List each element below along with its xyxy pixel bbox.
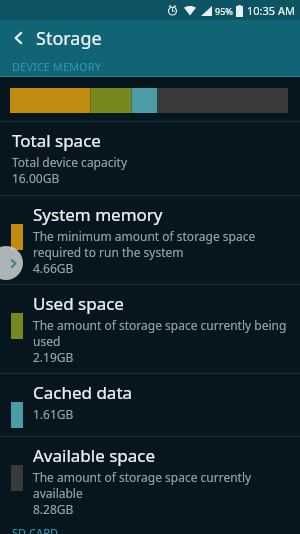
- staticText: Available space: [33, 444, 156, 467]
- staticText: used: [33, 333, 61, 349]
- staticText: Total space: [12, 129, 101, 152]
- button[interactable]: Open side panel: [0, 246, 23, 280]
- button[interactable]: Available space: [0, 437, 300, 525]
- staticText: Used space: [33, 292, 124, 315]
- button[interactable]: System memory: [0, 196, 300, 284]
- staticText: System memory: [33, 203, 163, 226]
- staticText: 16.00GB: [12, 170, 60, 186]
- button[interactable]: Used space: [0, 285, 300, 373]
- button[interactable]: Back: [0, 20, 300, 56]
- staticText: Total device capacity: [12, 154, 128, 170]
- staticText: 1.61GB: [33, 406, 74, 422]
- button[interactable]: Cached data: [0, 374, 300, 436]
- staticText: Cached data: [33, 381, 133, 404]
- staticText: Storage: [36, 26, 102, 51]
- staticText: The amount of storage space currently: [33, 469, 252, 485]
- staticText: The amount of storage space currently be…: [33, 317, 287, 333]
- other: Back: [8, 27, 30, 49]
- staticText: required to run the system: [33, 244, 184, 260]
- button[interactable]: Total space: [0, 122, 300, 195]
- staticText: The minimum amount of storage space: [33, 228, 256, 244]
- staticText: 8.28GB: [33, 501, 74, 517]
- staticText: 2.19GB: [33, 349, 74, 365]
- staticText: SD CARD: [12, 525, 59, 534]
- staticText: 10:35 AM: [247, 3, 295, 18]
- staticText: 95%: [215, 5, 233, 17]
- staticText: 4.66GB: [33, 260, 74, 276]
- staticText: available: [33, 485, 83, 501]
- staticText: DEVICE MEMORY: [12, 59, 102, 74]
